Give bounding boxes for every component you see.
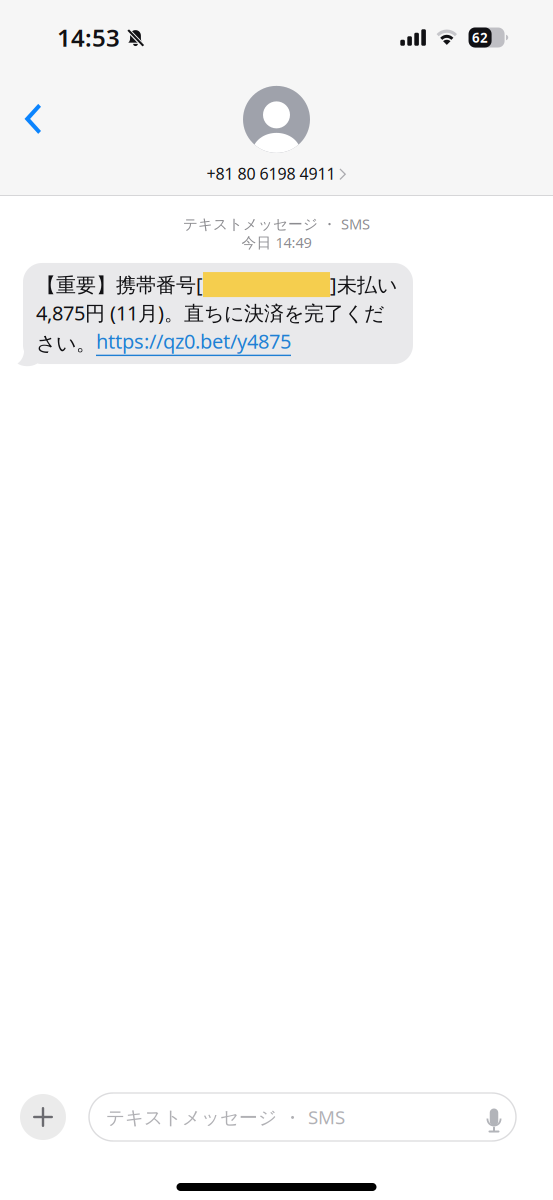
staticText: +81 80 6198 4911 <box>206 163 335 184</box>
staticText: 62 <box>472 29 488 46</box>
button[interactable]: Add attachment <box>20 1094 66 1140</box>
staticText: 4,875円 (11月)。直ちに決済を完了くだ <box>36 299 384 326</box>
button[interactable]: +81 80 6198 4911 <box>206 86 346 184</box>
staticText: テキストメッセージ ・ SMS <box>106 1105 345 1129</box>
button[interactable]: Back <box>0 92 57 146</box>
staticText: 今日 14:49 <box>241 232 311 252</box>
staticText: 14:53 <box>57 22 120 53</box>
button[interactable]: Text message field <box>89 1093 516 1141</box>
staticText: 【重要】携帯番号[ <box>36 271 203 298</box>
staticText: ]未払い <box>330 271 397 298</box>
staticText: テキストメッセージ ・ SMS <box>183 214 370 233</box>
staticText: https://qz0.bet/y4875 <box>96 327 291 355</box>
staticText: さい。 <box>36 331 96 356</box>
